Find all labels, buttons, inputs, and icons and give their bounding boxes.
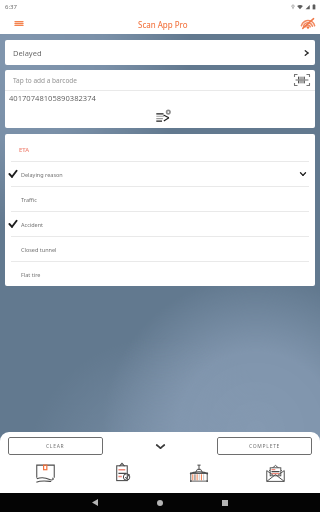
staticText: Tap to add a barcode xyxy=(13,76,77,85)
staticText: Traffic xyxy=(21,196,37,203)
button[interactable]: Expand actions xyxy=(151,437,169,455)
button[interactable]: Offline, no connection xyxy=(299,14,317,32)
button[interactable]: Traffic xyxy=(5,187,315,211)
button[interactable]: Tasks xyxy=(80,461,160,485)
button[interactable]: Containers xyxy=(160,461,240,485)
staticText: Delaying reason xyxy=(21,171,63,178)
button[interactable]: Tap to add a barcode xyxy=(5,70,315,90)
staticText: CLEAR xyxy=(46,443,65,450)
button[interactable]: Delaying reason xyxy=(5,162,315,186)
button[interactable]: Deliveries xyxy=(0,461,80,485)
staticText: 40170748105890382374 xyxy=(9,93,96,103)
button[interactable]: Home xyxy=(150,493,170,512)
staticText: Delayed xyxy=(13,48,42,58)
button[interactable]: Flat tire xyxy=(5,262,315,286)
button[interactable]: Messages xyxy=(240,461,320,485)
staticText: 6:37 xyxy=(5,3,17,11)
button[interactable]: CLEAR xyxy=(8,437,103,455)
button[interactable]: Accident xyxy=(5,212,315,236)
staticText: Accident xyxy=(21,221,44,228)
button[interactable]: Recents xyxy=(215,493,235,512)
button[interactable]: Open navigation menu xyxy=(10,14,28,32)
staticText: Flat tire xyxy=(21,271,41,278)
button[interactable]: Delayed xyxy=(5,40,315,65)
button[interactable]: COMPLETE xyxy=(217,437,312,455)
staticText: Scan App Pro xyxy=(138,19,188,30)
staticText: ETA xyxy=(19,146,30,154)
staticText: Closed tunnel xyxy=(21,246,57,253)
button[interactable]: Back xyxy=(85,493,105,512)
button[interactable]: Closed tunnel xyxy=(5,237,315,261)
staticText: COMPLETE xyxy=(249,443,281,450)
button[interactable]: Scan barcode xyxy=(293,71,311,89)
button[interactable]: Pending queue xyxy=(154,107,172,125)
